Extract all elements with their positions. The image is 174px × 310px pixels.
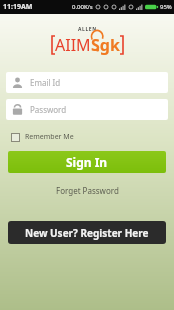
staticText: 11:19AM [3, 2, 33, 12]
staticText: 0.00K/s [72, 3, 93, 11]
staticText: Email Id [30, 77, 61, 88]
button[interactable]: New User? Register Here [8, 221, 166, 244]
staticText: ALLEN [78, 26, 97, 33]
button[interactable]: Email Id [6, 72, 168, 93]
staticText: 95% [160, 3, 172, 11]
staticText: Sgk [91, 34, 120, 56]
button[interactable]: Remember Me [9, 130, 76, 144]
staticText: AIIM [55, 34, 91, 56]
button[interactable]: Forget Password [53, 182, 122, 199]
button[interactable]: Password [6, 99, 168, 120]
staticText: Remember Me [25, 132, 74, 142]
staticText: Sign In [66, 154, 108, 170]
button[interactable]: Sign In [8, 151, 166, 173]
staticText: Password [30, 104, 67, 115]
staticText: New User? Register Here [25, 226, 149, 240]
